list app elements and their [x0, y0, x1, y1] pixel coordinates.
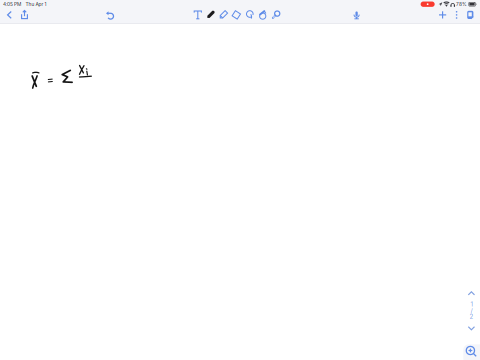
button[interactable]: Highlighter: [215, 8, 231, 22]
staticText: 4:05 PM: [3, 1, 21, 7]
button[interactable]: Next page: [463, 323, 479, 334]
button[interactable]: Sticker: [268, 8, 284, 22]
button[interactable]: Pages: [462, 8, 478, 22]
button[interactable]: Previous page: [463, 288, 479, 299]
button[interactable]: Shapes: [255, 8, 271, 22]
button[interactable]: Back: [1, 8, 17, 22]
button[interactable]: Text: [190, 8, 206, 22]
button[interactable]: Add page: [435, 8, 451, 22]
button[interactable]: Lasso: [242, 8, 258, 22]
button[interactable]: Eraser: [228, 8, 244, 22]
staticText: 2: [469, 313, 473, 320]
button[interactable]: Zoom: [463, 344, 480, 360]
button[interactable]: More: [449, 8, 465, 22]
button[interactable]: Share: [16, 8, 32, 22]
staticText: Thu Apr 1: [25, 1, 46, 7]
staticText: 1: [470, 301, 472, 308]
button[interactable]: Record audio: [349, 8, 365, 22]
button[interactable]: Pen: [202, 8, 218, 22]
button[interactable]: Undo: [102, 8, 118, 22]
staticText: 78%: [456, 1, 467, 7]
staticText: /: [470, 307, 472, 315]
